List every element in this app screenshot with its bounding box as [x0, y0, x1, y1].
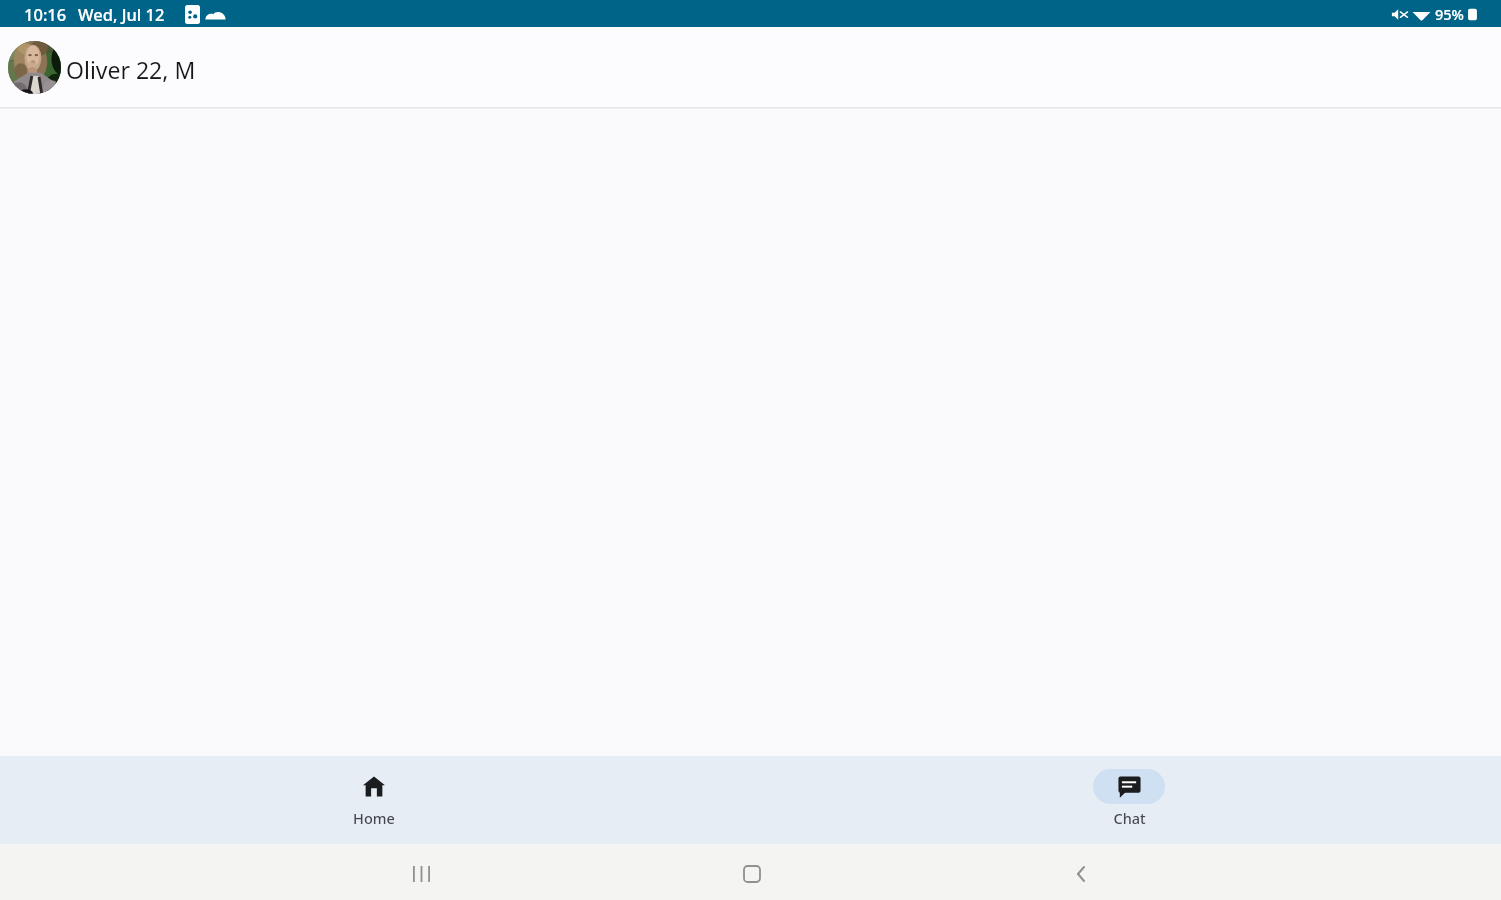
button[interactable]: Chat: [1093, 756, 1165, 834]
other: Chat: [1118, 776, 1141, 798]
button[interactable]: Home: [730, 852, 774, 896]
button[interactable]: Back: [1059, 852, 1103, 896]
button[interactable]: Oliver 22, M: [0, 27, 1501, 107]
staticText: 95%: [1435, 4, 1464, 24]
staticText: Wed, Jul 12: [78, 3, 165, 25]
button[interactable]: Recent apps: [399, 852, 443, 896]
staticText: Home: [353, 808, 395, 828]
staticText: Oliver 22, M: [66, 54, 196, 85]
other: Home: [363, 776, 385, 797]
staticText: Chat: [1113, 808, 1146, 828]
staticText: 10:16: [24, 3, 67, 25]
button[interactable]: Home: [338, 756, 410, 834]
